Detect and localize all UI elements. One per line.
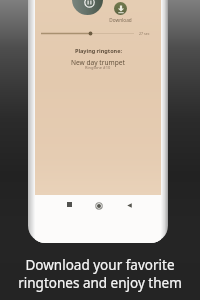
- staticText: Download: [106, 17, 135, 23]
- staticText: Ringtone #10: [85, 65, 111, 70]
- staticText: Playing ringtone:: [75, 47, 122, 54]
- staticText: New day trumpet: [71, 58, 125, 67]
- button[interactable]: Home: [90, 197, 107, 214]
- staticText: ringtones and enjoy them: [0, 274, 200, 292]
- button[interactable]: Pause: [72, 0, 103, 15]
- staticText: 27 sec: [139, 31, 150, 36]
- button[interactable]: Download: [106, 2, 135, 23]
- button[interactable]: Recents: [61, 196, 77, 212]
- button[interactable]: Back: [121, 197, 137, 213]
- staticText: Download your favorite: [0, 256, 200, 274]
